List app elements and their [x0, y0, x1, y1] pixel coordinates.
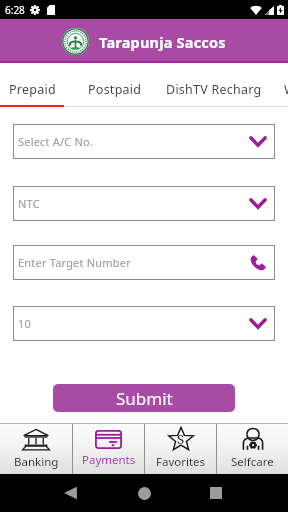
button[interactable]: Prepaid — [0, 63, 64, 104]
button[interactable]: DishTV Recharge — [166, 63, 262, 104]
other: Open dropdown — [249, 198, 267, 209]
staticText: Payments — [82, 452, 136, 468]
staticText: 10 — [18, 316, 31, 331]
button[interactable]: NTC — [13, 186, 275, 221]
button[interactable]: Water Bill — [262, 63, 288, 104]
button[interactable]: Home — [138, 487, 151, 500]
staticText: Water Bill — [284, 81, 288, 98]
other: Open dropdown — [249, 318, 267, 329]
button[interactable]: Postpaid — [64, 63, 166, 104]
other: Open dropdown — [249, 136, 267, 147]
button[interactable]: Select A/C No. — [13, 124, 275, 159]
button[interactable]: Selfcare — [217, 423, 288, 474]
button[interactable]: Back — [64, 486, 78, 500]
staticText: S — [177, 430, 185, 448]
staticText: NTC — [18, 196, 40, 211]
staticText: Prepaid — [9, 81, 56, 98]
staticText: Selfcare — [231, 454, 274, 470]
staticText: Banking — [14, 454, 59, 470]
button[interactable]: Submit — [53, 384, 235, 412]
staticText: DishTV Recharge — [166, 81, 262, 98]
button[interactable]: Banking — [0, 423, 72, 474]
staticText: 6:28 — [5, 3, 25, 17]
staticText: Favorites — [156, 454, 206, 470]
staticText: Submit — [116, 387, 173, 410]
other: Pick contact — [250, 254, 267, 271]
staticText: Tarapunja Saccos — [99, 32, 226, 52]
staticText: Select A/C No. — [18, 134, 94, 149]
button[interactable]: S — [145, 423, 216, 474]
button[interactable]: 10 — [13, 306, 275, 341]
staticText: Enter Target Number — [18, 255, 131, 270]
button[interactable]: Payments — [73, 423, 144, 474]
button[interactable]: Enter Target Number — [13, 245, 275, 280]
staticText: Postpaid — [88, 81, 142, 98]
